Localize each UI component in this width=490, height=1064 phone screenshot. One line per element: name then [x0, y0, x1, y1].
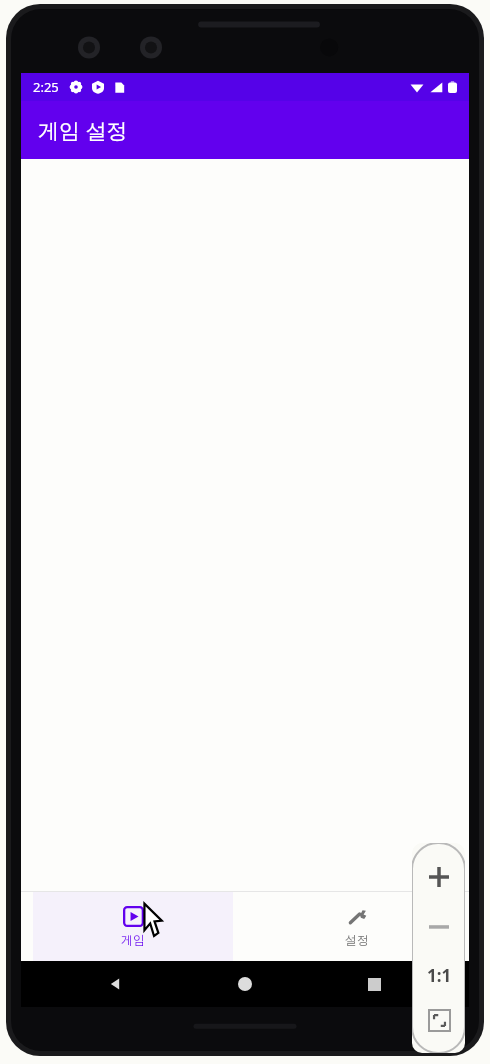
- staticText: 게임: [121, 932, 145, 947]
- button[interactable]: Recent apps: [357, 967, 391, 1001]
- button[interactable]: Zoom in: [419, 857, 459, 897]
- staticText: 1:1: [427, 964, 452, 987]
- button[interactable]: Fit to screen: [424, 1005, 454, 1035]
- button[interactable]: 설정: [245, 892, 469, 961]
- button[interactable]: 1:1: [417, 959, 461, 991]
- staticText: 2:25: [33, 78, 59, 96]
- staticText: 설정: [345, 932, 369, 947]
- button[interactable]: 게임: [21, 892, 245, 961]
- button[interactable]: Home: [228, 967, 262, 1001]
- staticText: 게임 설정: [38, 116, 128, 145]
- button[interactable]: Zoom out: [419, 907, 459, 947]
- button[interactable]: Back: [99, 967, 133, 1001]
